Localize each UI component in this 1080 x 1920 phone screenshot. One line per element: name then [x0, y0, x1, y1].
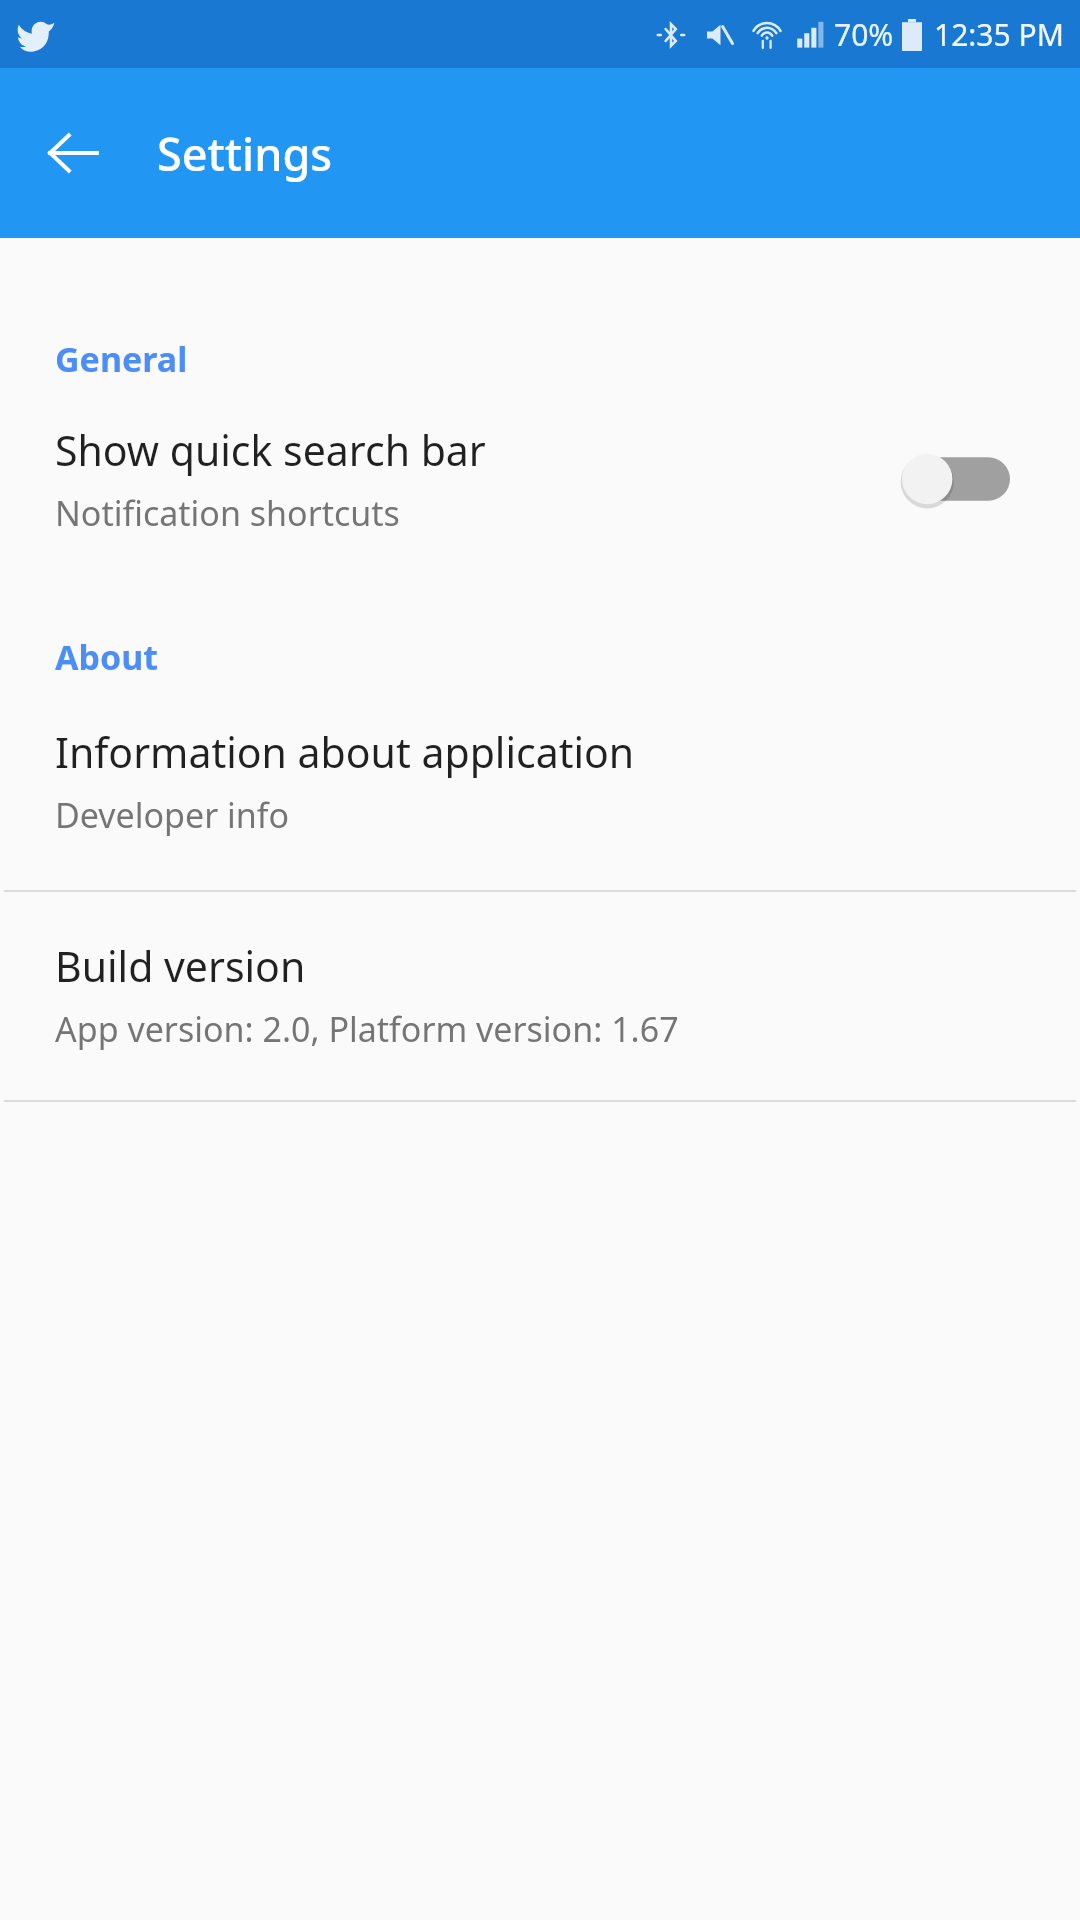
staticText: 12:35 PM: [934, 14, 1064, 55]
staticText: 70%: [834, 14, 894, 55]
button[interactable]: Show quick search bar: [0, 422, 1080, 536]
staticText: Developer info: [55, 792, 290, 838]
staticText: Notification shortcuts: [55, 490, 400, 536]
staticText: Show quick search bar: [55, 422, 486, 478]
button[interactable]: Back: [28, 108, 118, 198]
staticText: App version: 2.0, Platform version: 1.67: [55, 1006, 679, 1052]
button[interactable]: Build version: [0, 892, 1080, 1052]
staticText: General: [55, 336, 188, 382]
button[interactable]: Show quick search bar toggle: [890, 444, 1010, 514]
staticText: About: [55, 634, 159, 680]
button[interactable]: Information about application: [0, 724, 1080, 838]
staticText: Build version: [55, 938, 306, 994]
staticText: Information about application: [55, 724, 635, 780]
staticText: Settings: [157, 123, 333, 184]
